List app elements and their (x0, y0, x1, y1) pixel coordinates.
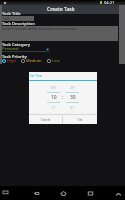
staticText: 30 (70, 94, 76, 101)
staticText: 31 (70, 105, 75, 110)
staticText: Cancel (41, 118, 51, 122)
button[interactable]: Recent apps (85, 188, 95, 198)
staticText: : (62, 94, 64, 101)
staticText: 29 (70, 85, 75, 90)
staticText: 10 (51, 94, 57, 101)
staticText: Set (78, 118, 83, 122)
staticText: High (7, 58, 16, 63)
staticText: Task Category (2, 42, 31, 47)
button[interactable]: Cancel (29, 115, 62, 124)
staticText: Task Priority (2, 54, 27, 59)
staticText: 04:21 (104, 0, 115, 5)
button[interactable]: Back (31, 188, 41, 198)
staticText: 11 (51, 105, 56, 110)
staticText: Task Description (2, 21, 35, 26)
button[interactable]: Expand (114, 190, 122, 198)
button[interactable]: Low (47, 58, 60, 63)
staticText: Task Title (2, 11, 21, 16)
staticText: Call (2, 16, 9, 21)
button[interactable]: High (2, 58, 16, 63)
staticText: Create Task (47, 6, 75, 13)
staticText: Medium (26, 58, 42, 63)
staticText: 09 (51, 85, 56, 90)
button[interactable]: Medium (21, 58, 42, 63)
staticText: Low (52, 58, 60, 63)
button[interactable]: Hide keyboard (2, 190, 9, 197)
button[interactable]: Set (63, 115, 97, 124)
staticText: Set Time (30, 74, 43, 78)
staticText: Personal (2, 46, 19, 51)
button[interactable]: Home (58, 188, 68, 198)
staticText: Lorem ipsum dolor sit amet consectetur (2, 26, 78, 31)
button[interactable]: Personal (2, 46, 50, 52)
